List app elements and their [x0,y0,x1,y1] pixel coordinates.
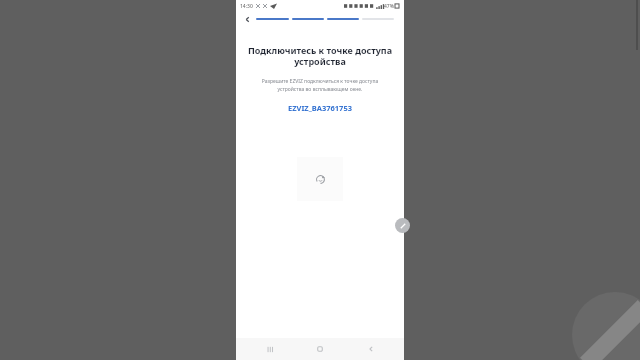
staticText: 47% [384,3,394,10]
button[interactable]: Home [303,338,337,360]
staticText: 14:30 [240,3,253,10]
button[interactable]: EZVIZ_BA3761753 [286,102,354,114]
button[interactable]: Recent apps [253,338,287,360]
staticText: Подключитесь к точке доступа устройства [245,44,395,68]
button[interactable]: Back [241,13,253,25]
button[interactable]: Edit [395,218,410,233]
staticText: Разрешите EZVIZ подключиться к точке дос… [245,78,395,93]
button[interactable]: Back [354,338,388,360]
staticText: EZVIZ_BA3761753 [288,103,352,113]
